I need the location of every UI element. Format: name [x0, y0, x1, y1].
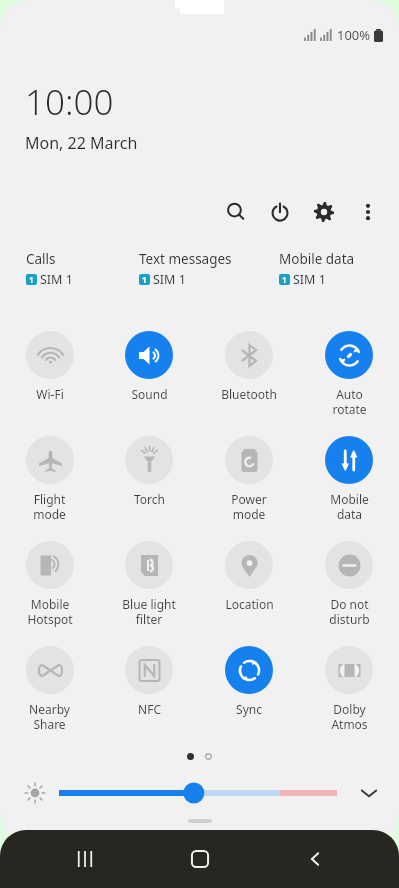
button[interactable]: Settings	[307, 195, 341, 229]
button[interactable]: Mobile data	[279, 250, 379, 288]
button[interactable]: Sync	[199, 640, 299, 745]
button[interactable]: Bluetooth	[199, 325, 299, 430]
button[interactable]: Torch	[99, 430, 199, 535]
button[interactable]: Do not disturb	[299, 535, 399, 640]
button[interactable]: Search	[219, 195, 253, 229]
staticText: 1	[282, 274, 287, 285]
staticText: Mobile data	[330, 491, 369, 522]
button[interactable]: Expand brightness settings	[351, 775, 387, 811]
button[interactable]	[59, 780, 337, 806]
button[interactable]: Nearby Share	[0, 640, 99, 745]
button[interactable]: Mobile data	[299, 430, 399, 535]
staticText: Wi-Fi	[36, 386, 64, 402]
staticText: Blue light filter	[122, 596, 176, 627]
button[interactable]: Back	[284, 830, 344, 888]
button[interactable]: Home	[170, 830, 230, 888]
staticText: Torch	[134, 491, 165, 507]
staticText: Mobile Hotspot	[27, 596, 73, 627]
staticText: 100%	[337, 26, 371, 44]
button[interactable]: Power mode	[199, 430, 299, 535]
staticText: Bluetooth	[221, 386, 277, 402]
staticText: NFC	[138, 701, 161, 717]
staticText: 10:00	[25, 78, 114, 126]
staticText: SIM 1	[40, 271, 73, 288]
staticText: 1	[29, 274, 34, 285]
button[interactable]: Text messages	[139, 250, 279, 288]
button[interactable]: Mobile Hotspot	[0, 535, 99, 640]
staticText: Do not disturb	[329, 596, 370, 627]
staticText: Text messages	[139, 250, 232, 268]
staticText: Auto rotate	[332, 386, 367, 417]
button[interactable]: Sound	[99, 325, 199, 430]
staticText: Flight mode	[33, 491, 66, 522]
button[interactable]: Power off	[263, 195, 297, 229]
button[interactable]: More options	[351, 195, 385, 229]
staticText: Dolby Atmos	[331, 701, 368, 732]
staticText: Calls	[26, 250, 56, 268]
staticText: Nearby Share	[29, 701, 70, 732]
button[interactable]: NFC	[99, 640, 199, 745]
staticText: SIM 1	[293, 271, 326, 288]
staticText: Sync	[236, 701, 262, 717]
staticText: SIM 1	[153, 271, 186, 288]
staticText: Power mode	[231, 491, 267, 522]
button[interactable]: Flight mode	[0, 430, 99, 535]
button[interactable]: Recent apps	[55, 830, 115, 888]
button[interactable]: Dolby Atmos	[299, 640, 399, 745]
staticText: Location	[225, 596, 274, 612]
staticText: 1	[142, 274, 147, 285]
button[interactable]: Blue light filter	[99, 535, 199, 640]
button[interactable]: Auto rotate	[299, 325, 399, 430]
staticText: Sound	[131, 386, 168, 402]
staticText: Mon, 22 March	[25, 132, 138, 154]
staticText: Mobile data	[279, 250, 355, 268]
button[interactable]: Calls	[26, 250, 139, 288]
button[interactable]: Wi-Fi	[0, 325, 99, 430]
button[interactable]: Location	[199, 535, 299, 640]
